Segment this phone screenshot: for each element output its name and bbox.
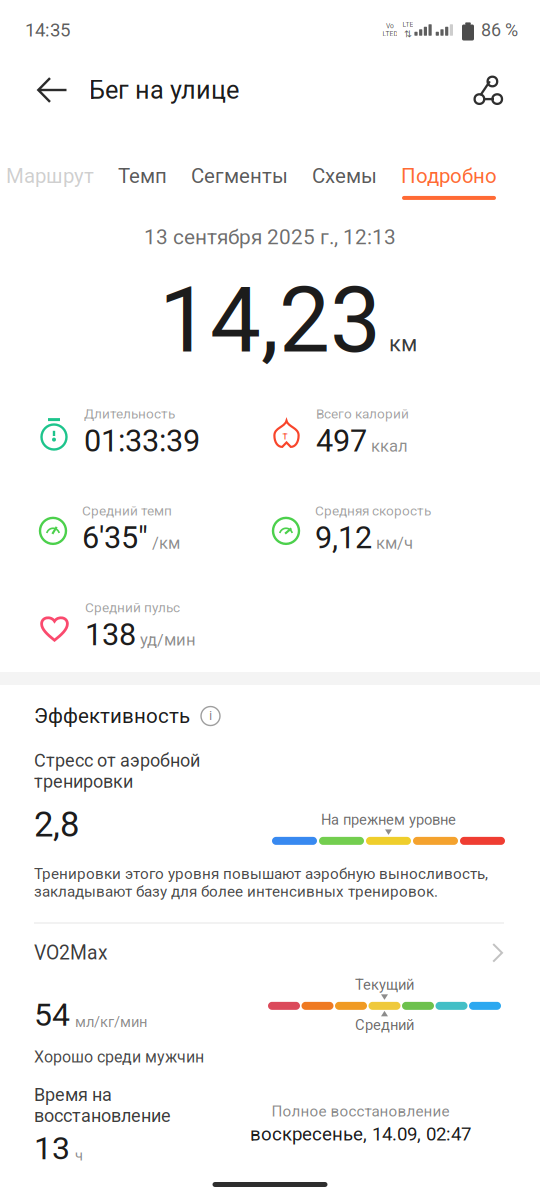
staticText: 13 — [34, 1129, 70, 1167]
staticText: Текущий — [355, 976, 414, 993]
staticText: 6'35" — [82, 520, 148, 556]
staticText: ккал — [371, 436, 408, 456]
button[interactable]: Схемы — [300, 164, 389, 188]
staticText: На прежнем уровне — [321, 811, 456, 828]
staticText: Стресс от аэробной тренировки — [34, 750, 200, 792]
staticText: ч — [75, 1147, 83, 1164]
staticText: 14,23 — [159, 267, 381, 374]
staticText: 497 — [316, 423, 367, 459]
staticText: 2,8 — [34, 804, 79, 845]
staticText: VO2Max — [34, 941, 108, 964]
staticText: 13 сентября 2025 г., 12:13 — [144, 225, 396, 249]
staticText: Тренировки этого уровня повышают аэробну… — [34, 865, 488, 900]
button[interactable]: Маршрут — [0, 164, 106, 188]
staticText: Схемы — [312, 164, 377, 188]
staticText: 138 — [85, 617, 136, 653]
staticText: Хорошо среди мужчин — [34, 1047, 204, 1066]
button[interactable]: VO2Max — [34, 923, 504, 964]
staticText: LTED — [382, 30, 397, 38]
staticText: 01:33:39 — [84, 423, 200, 459]
staticText: уд/мин — [140, 630, 196, 650]
staticText: Время на восстановление — [34, 1084, 171, 1126]
button[interactable]: Share — [464, 68, 511, 111]
staticText: ⇅ — [404, 28, 412, 39]
staticText: Маршрут — [6, 164, 94, 188]
button[interactable]: Подробно — [389, 164, 509, 200]
staticText: 54 — [34, 996, 70, 1033]
button[interactable]: Темп — [106, 164, 179, 188]
staticText: км/ч — [376, 533, 413, 553]
staticText: Темп — [118, 164, 167, 188]
staticText: Подробно — [401, 164, 497, 188]
staticText: i — [209, 708, 212, 723]
staticText: Сегменты — [191, 164, 288, 188]
staticText: км — [389, 331, 417, 357]
staticText: /км — [152, 533, 180, 553]
staticText: Vo — [386, 22, 394, 30]
staticText: воскресенье, 14.09, 02:47 — [250, 1123, 471, 1145]
staticText: Эффективность — [34, 704, 190, 728]
button[interactable]: Сегменты — [179, 164, 300, 188]
staticText: 86 % — [481, 19, 518, 41]
staticText: Средний темп — [82, 503, 172, 519]
staticText: LTE — [402, 21, 413, 28]
staticText: Бег на улице — [89, 75, 239, 105]
staticText: мл/кг/мин — [75, 1013, 147, 1030]
staticText: 9,12 — [315, 520, 372, 556]
staticText: Всего калорий — [316, 406, 409, 422]
staticText: 14:35 — [25, 19, 70, 41]
staticText: Средний пульс — [85, 600, 180, 616]
staticText: Длительность — [84, 406, 175, 422]
staticText: т — [282, 429, 287, 442]
staticText: Средняя скорость — [315, 503, 431, 519]
staticText: Полное восстановление — [271, 1102, 449, 1120]
button[interactable]: Back — [29, 68, 76, 111]
staticText: Средний — [355, 1016, 414, 1033]
